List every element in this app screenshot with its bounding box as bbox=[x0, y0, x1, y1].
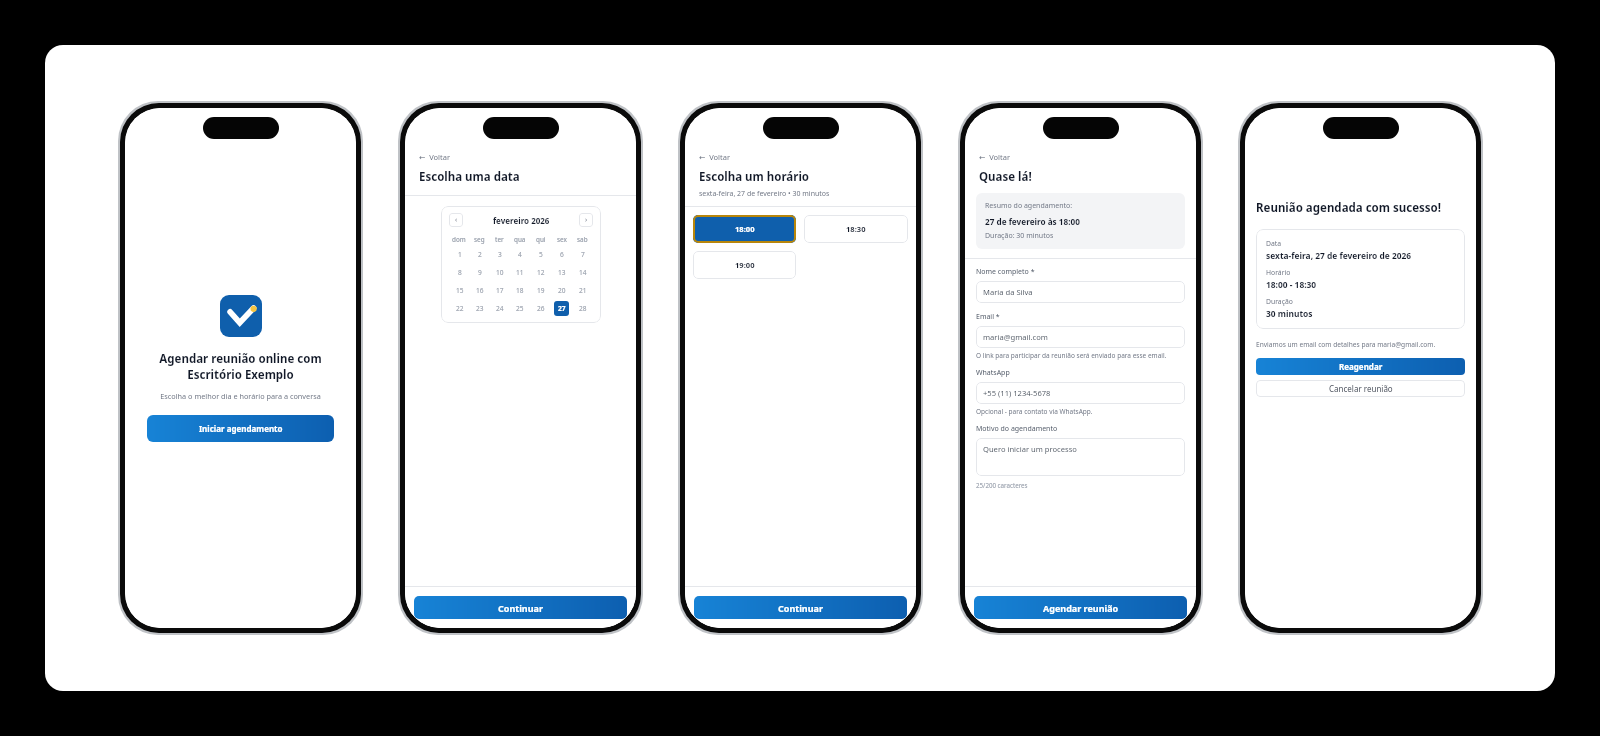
staticText: 19 bbox=[537, 286, 545, 295]
staticText: Duração bbox=[1266, 297, 1293, 306]
staticText: qui bbox=[536, 235, 546, 244]
button[interactable]: Continuar bbox=[414, 596, 627, 619]
button[interactable]: 18:00 bbox=[693, 215, 796, 243]
button[interactable]: maria@gmail.com bbox=[976, 326, 1185, 348]
button[interactable]: 13 bbox=[554, 265, 569, 280]
staticText: 7 bbox=[581, 250, 585, 259]
staticText: Enviamos um email com detalhes para mari… bbox=[1256, 340, 1436, 349]
button[interactable]: Quero iniciar um processo bbox=[976, 438, 1185, 476]
button[interactable]: Cancelar reunião bbox=[1256, 380, 1465, 397]
staticText: 9 bbox=[478, 268, 482, 277]
staticText: sexta-feira, 27 de fevereiro de 2026 bbox=[1266, 250, 1412, 261]
button[interactable]: Continuar bbox=[694, 596, 907, 619]
staticText: Escolha o melhor dia e horário para a co… bbox=[147, 391, 334, 401]
staticText: 13 bbox=[558, 268, 566, 277]
button[interactable]: +55 (11) 1234-5678 bbox=[976, 382, 1185, 404]
staticText: Quase lá! bbox=[979, 169, 1032, 185]
button[interactable]: 20 bbox=[554, 283, 569, 298]
button[interactable]: 10 bbox=[492, 265, 507, 280]
staticText: maria@gmail.com bbox=[983, 332, 1048, 342]
staticText: 4 bbox=[518, 250, 522, 259]
staticText: ‹ bbox=[455, 215, 458, 225]
staticText: 30 minutos bbox=[1266, 308, 1313, 319]
button[interactable]: ← Voltar bbox=[405, 108, 636, 164]
staticText: Duração: 30 minutos bbox=[985, 231, 1054, 241]
staticText: 21 bbox=[579, 286, 587, 295]
staticText: 25 bbox=[516, 304, 524, 313]
staticText: sexta-feira, 27 de fevereiro • 30 minuto… bbox=[699, 189, 830, 199]
button[interactable]: Reagendar bbox=[1256, 358, 1465, 375]
button[interactable]: 15 bbox=[452, 283, 467, 298]
staticText: 5 bbox=[539, 250, 543, 259]
staticText: Continuar bbox=[498, 602, 543, 614]
staticText: Iniciar agendamento bbox=[199, 423, 283, 434]
staticText: ter bbox=[495, 235, 504, 244]
staticText: 25/200 caracteres bbox=[976, 481, 1028, 489]
staticText: Maria da Silva bbox=[983, 287, 1033, 297]
staticText: Motivo do agendamento bbox=[976, 424, 1058, 434]
staticText: 18 bbox=[516, 286, 524, 295]
button[interactable]: 9 bbox=[472, 265, 487, 280]
staticText: O link para participar da reunião será e… bbox=[976, 351, 1167, 360]
staticText: Agendar reunião online com Escritório Ex… bbox=[147, 351, 334, 382]
button[interactable]: 27 bbox=[554, 301, 569, 316]
staticText: 27 bbox=[558, 304, 566, 313]
button[interactable]: 24 bbox=[492, 301, 507, 316]
button[interactable]: 18 bbox=[512, 283, 527, 298]
staticText: ← Voltar bbox=[699, 152, 731, 162]
button[interactable]: 8 bbox=[452, 265, 467, 280]
button[interactable]: 5 bbox=[533, 247, 548, 262]
button[interactable]: 11 bbox=[512, 265, 527, 280]
button[interactable]: 26 bbox=[533, 301, 548, 316]
staticText: Data bbox=[1266, 239, 1282, 248]
staticText: 19:00 bbox=[735, 260, 755, 270]
button[interactable]: 18:30 bbox=[804, 215, 908, 243]
button[interactable]: 16 bbox=[472, 283, 487, 298]
button[interactable]: 3 bbox=[492, 247, 507, 262]
button[interactable]: 2 bbox=[472, 247, 487, 262]
button[interactable]: Agendar reunião bbox=[974, 596, 1187, 619]
staticText: Nome completo * bbox=[976, 267, 1035, 277]
button[interactable]: 4 bbox=[512, 247, 527, 262]
staticText: Reagendar bbox=[1339, 361, 1383, 372]
button[interactable]: 7 bbox=[575, 247, 590, 262]
button[interactable]: Iniciar agendamento bbox=[147, 415, 334, 442]
staticText: 22 bbox=[456, 304, 464, 313]
staticText: 2 bbox=[478, 250, 482, 259]
staticText: 16 bbox=[476, 286, 484, 295]
staticText: ← Voltar bbox=[419, 152, 451, 162]
staticText: 11 bbox=[516, 268, 524, 277]
button[interactable]: 23 bbox=[472, 301, 487, 316]
button[interactable]: ← Voltar bbox=[685, 108, 916, 164]
staticText: 20 bbox=[558, 286, 566, 295]
staticText: Horário bbox=[1266, 268, 1291, 277]
staticText: Email * bbox=[976, 312, 1000, 322]
staticText: Reunião agendada com sucesso! bbox=[1256, 200, 1442, 216]
staticText: Escolha uma data bbox=[419, 169, 520, 185]
staticText: 24 bbox=[496, 304, 504, 313]
staticText: dom bbox=[452, 235, 466, 244]
button[interactable]: Mês anterior bbox=[449, 213, 463, 227]
staticText: qua bbox=[514, 235, 526, 244]
button[interactable]: ← Voltar bbox=[965, 108, 1196, 164]
staticText: 8 bbox=[458, 268, 462, 277]
button[interactable]: Próximo mês bbox=[579, 213, 593, 227]
button[interactable]: 6 bbox=[554, 247, 569, 262]
staticText: 28 bbox=[579, 304, 587, 313]
staticText: 12 bbox=[537, 268, 545, 277]
button[interactable]: 28 bbox=[575, 301, 590, 316]
staticText: › bbox=[585, 215, 588, 225]
button[interactable]: 19:00 bbox=[693, 251, 796, 279]
button[interactable]: 14 bbox=[575, 265, 590, 280]
button[interactable]: 1 bbox=[452, 247, 467, 262]
button[interactable]: 17 bbox=[492, 283, 507, 298]
button[interactable]: 25 bbox=[512, 301, 527, 316]
button[interactable]: 22 bbox=[452, 301, 467, 316]
staticText: 18:00 - 18:30 bbox=[1266, 279, 1317, 290]
button[interactable]: 19 bbox=[533, 283, 548, 298]
button[interactable]: Maria da Silva bbox=[976, 281, 1185, 303]
staticText: 3 bbox=[498, 250, 502, 259]
button[interactable]: 12 bbox=[533, 265, 548, 280]
staticText: 23 bbox=[476, 304, 484, 313]
button[interactable]: 21 bbox=[575, 283, 590, 298]
